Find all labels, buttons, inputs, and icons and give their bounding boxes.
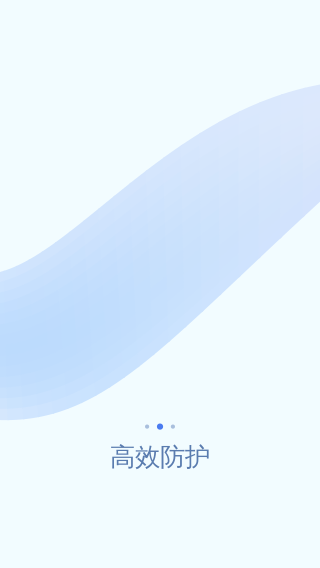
staticText: 高效防护 (110, 441, 210, 472)
